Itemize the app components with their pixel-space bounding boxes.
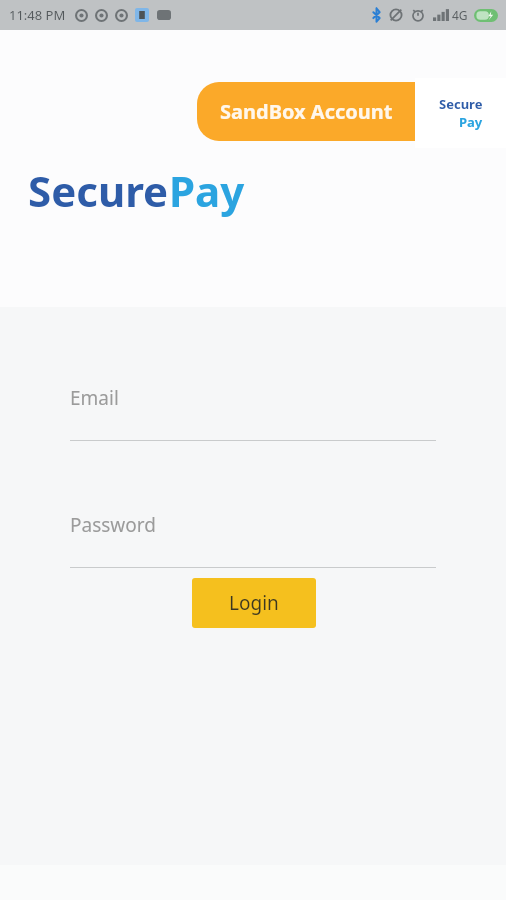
button[interactable]: Login bbox=[192, 578, 316, 628]
staticText: Email bbox=[70, 385, 119, 411]
button[interactable]: Password bbox=[70, 512, 436, 573]
staticText: 11:48 PM bbox=[9, 6, 66, 24]
staticText: 4G bbox=[452, 7, 468, 23]
staticText: Pay bbox=[169, 162, 245, 219]
staticText: Login bbox=[229, 590, 279, 616]
staticText: SandBox Account bbox=[220, 98, 393, 125]
staticText: Secure bbox=[439, 95, 483, 113]
staticText: Password bbox=[70, 512, 156, 538]
staticText: Secure bbox=[28, 162, 169, 219]
button[interactable]: Email bbox=[70, 385, 436, 446]
button[interactable]: SandBox Account bbox=[197, 82, 415, 141]
staticText: Pay bbox=[459, 113, 483, 131]
